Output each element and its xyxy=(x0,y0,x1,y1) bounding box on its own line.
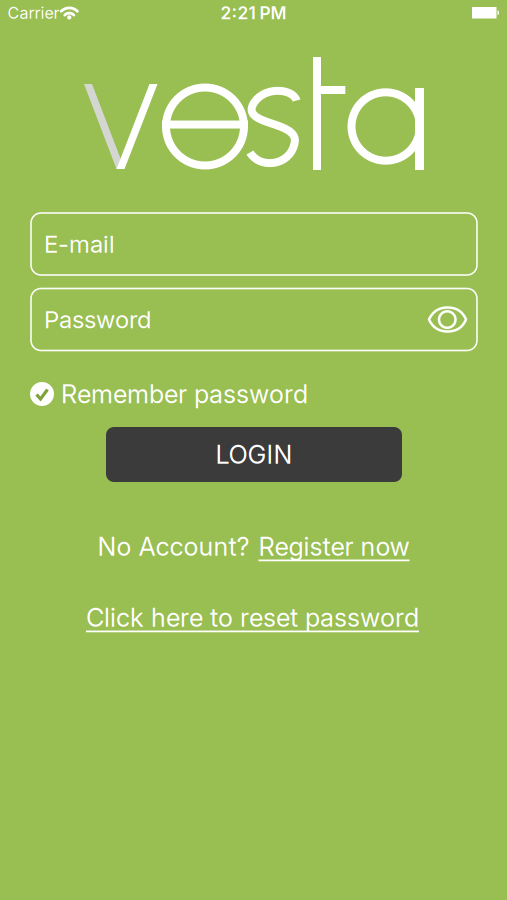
staticText: Register now xyxy=(258,531,409,562)
staticText: Remember password xyxy=(61,379,308,409)
staticText: E-mail xyxy=(44,229,115,258)
button[interactable]: Click here to reset password xyxy=(86,602,419,633)
staticText: LOGIN xyxy=(215,439,292,470)
staticText: Click here to reset password xyxy=(86,602,419,633)
button[interactable]: Password xyxy=(31,288,477,350)
staticText: 2:21 PM xyxy=(220,2,286,23)
button[interactable]: Remember password xyxy=(30,379,477,409)
staticText: Carrier xyxy=(7,3,59,23)
button[interactable]: Register now xyxy=(258,531,409,562)
staticText: No Account? xyxy=(97,531,249,562)
button[interactable]: LOGIN xyxy=(106,427,402,482)
button[interactable]: Show password xyxy=(429,307,466,331)
staticText: Password xyxy=(44,305,151,334)
button[interactable]: E-mail xyxy=(31,213,477,275)
